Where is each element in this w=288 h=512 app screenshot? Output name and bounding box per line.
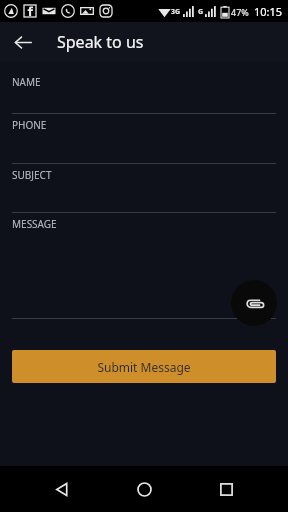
button[interactable]: MESSAGE bbox=[0, 213, 288, 319]
button[interactable]: Home bbox=[124, 469, 164, 509]
button[interactable]: Back bbox=[42, 469, 82, 509]
staticText: Speak to us bbox=[57, 31, 144, 53]
staticText: MESSAGE bbox=[12, 217, 57, 231]
staticText: PHONE bbox=[12, 118, 47, 132]
button[interactable]: SUBJECT bbox=[0, 164, 288, 213]
staticText: SUBJECT bbox=[12, 168, 52, 182]
staticText: NAME bbox=[12, 75, 41, 89]
button[interactable]: Attach file bbox=[231, 280, 277, 326]
button[interactable]: Recents bbox=[206, 469, 246, 509]
staticText: Submit Message bbox=[97, 359, 191, 375]
staticText: 3G bbox=[171, 7, 181, 17]
button[interactable]: Back bbox=[7, 26, 39, 58]
staticText: G bbox=[198, 7, 204, 17]
button[interactable]: NAME bbox=[0, 71, 288, 114]
button[interactable]: PHONE bbox=[0, 114, 288, 164]
staticText: 47% bbox=[231, 6, 249, 18]
staticText: 10:15 bbox=[254, 4, 283, 19]
button[interactable]: Submit Message bbox=[12, 350, 276, 383]
